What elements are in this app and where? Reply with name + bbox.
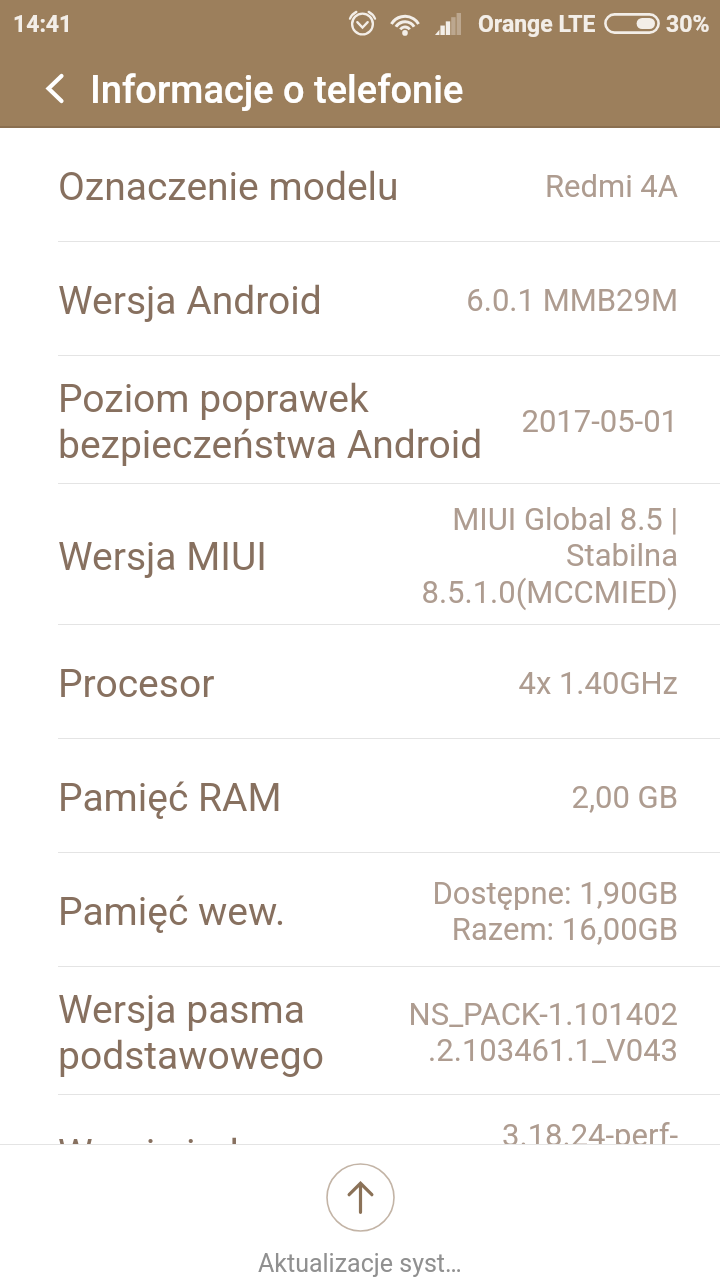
staticText: Redmi 4A: [544, 168, 678, 204]
staticText: NS_PACK-1.101402 .2.103461.1_V043: [408, 996, 678, 1069]
staticText: Pamięć RAM: [58, 775, 561, 821]
staticText: Orange LTE: [478, 11, 596, 38]
staticText: 6.0.1 MMB29M: [466, 282, 678, 318]
staticText: Poziom poprawek bezpieczeństwa Android: [58, 376, 511, 468]
staticText: Wersja jądra: [58, 1131, 492, 1177]
other: System updates: [326, 1163, 395, 1232]
button[interactable]: Wersja MIUI: [0, 484, 720, 625]
staticText: Pamięć wew.: [58, 889, 422, 935]
staticText: MIUI Global 8.5 | Stabilna 8.5.1.0(MCCMI…: [421, 501, 678, 611]
staticText: 4x 1.40GHz: [518, 665, 678, 701]
staticText: Oznaczenie modelu: [58, 164, 534, 210]
button[interactable]: Wersja Android: [0, 242, 720, 356]
staticText: Wersja pasma podstawowego: [58, 987, 398, 1079]
button[interactable]: Oznaczenie modelu: [0, 128, 720, 242]
staticText: Informacje o telefonie: [90, 68, 464, 113]
staticText: Wersja Android: [58, 278, 456, 324]
button[interactable]: Back: [20, 54, 76, 110]
staticText: 14:41: [13, 11, 73, 38]
button[interactable]: Procesor: [0, 625, 720, 739]
button[interactable]: System updates: [258, 1144, 462, 1278]
staticText: Wersja MIUI: [58, 534, 411, 580]
button[interactable]: Pamięć wew.: [0, 853, 720, 967]
staticText: 30%: [666, 11, 710, 38]
button[interactable]: Wersja pasma podstawowego: [0, 967, 720, 1095]
staticText: Dostępne: 1,90GB Razem: 16,00GB: [432, 875, 678, 948]
staticText: 2,00 GB: [571, 779, 678, 815]
button[interactable]: Pamięć RAM: [0, 739, 720, 853]
staticText: Aktualizacje syst…: [258, 1249, 462, 1278]
button[interactable]: Poziom poprawek bezpieczeństwa Android: [0, 356, 720, 484]
staticText: 2017-05-01: [521, 403, 678, 439]
button[interactable]: Wersja jądra: [0, 1095, 720, 1209]
staticText: Procesor: [58, 661, 508, 707]
staticText: 3.18.24-perf- g1fd8e8a: [502, 1117, 678, 1190]
